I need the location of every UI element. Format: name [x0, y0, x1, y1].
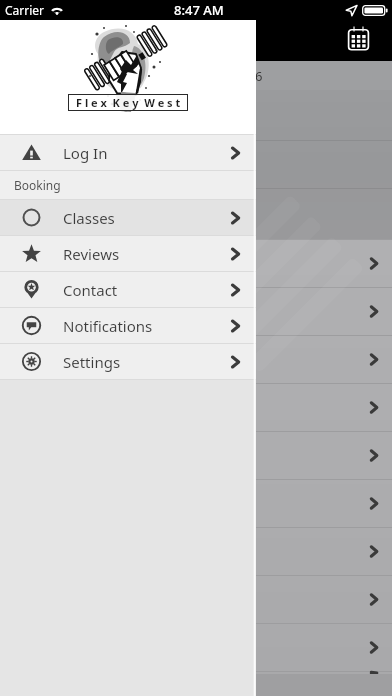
button[interactable]: Log In	[0, 135, 256, 170]
staticText: Booking	[14, 177, 61, 193]
staticText: 8:47 AM	[174, 1, 224, 19]
button[interactable]	[0, 288, 392, 335]
staticText: Settings	[63, 352, 121, 372]
button[interactable]	[0, 624, 392, 671]
button[interactable]	[0, 672, 392, 674]
button[interactable]	[0, 336, 392, 383]
staticText: Classes	[63, 208, 115, 228]
button[interactable]: Contact	[0, 272, 256, 307]
staticText: Reviews	[63, 244, 120, 264]
staticText: Contact	[63, 280, 118, 300]
button[interactable]: Notifications	[0, 308, 256, 343]
button[interactable]: Settings	[0, 344, 256, 379]
button[interactable]	[0, 480, 392, 527]
button[interactable]: Reviews	[0, 236, 256, 271]
button[interactable]	[0, 528, 392, 575]
button[interactable]: Classes	[0, 200, 256, 235]
staticText: Log In	[63, 143, 108, 163]
button[interactable]	[0, 384, 392, 431]
staticText: F l e x K e y W e s t	[76, 95, 181, 110]
button[interactable]	[0, 240, 392, 287]
staticText: Carrier	[5, 2, 45, 18]
button[interactable]	[0, 432, 392, 479]
staticText: Tuesday, January 6	[149, 67, 263, 85]
staticText: Notifications	[63, 316, 153, 336]
button[interactable]	[0, 576, 392, 623]
button[interactable]: Calendar	[341, 21, 375, 55]
